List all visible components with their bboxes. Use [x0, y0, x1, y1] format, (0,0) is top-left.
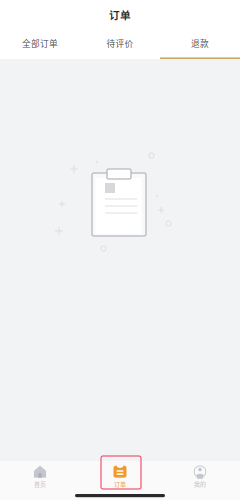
- staticText: 首页: [34, 480, 46, 488]
- button[interactable]: 待评价: [80, 29, 160, 59]
- staticText: 退款: [191, 37, 209, 49]
- staticText: 待评价: [106, 37, 133, 49]
- button[interactable]: 我的: [160, 466, 240, 488]
- button[interactable]: 首页: [0, 466, 80, 488]
- staticText: 订单: [109, 7, 131, 22]
- button[interactable]: 全部订单: [0, 29, 80, 59]
- staticText: 订单: [114, 480, 126, 488]
- button[interactable]: 退款: [160, 29, 240, 59]
- staticText: 我的: [194, 480, 206, 488]
- button[interactable]: 订单: [80, 466, 160, 488]
- staticText: 全部订单: [22, 37, 58, 49]
